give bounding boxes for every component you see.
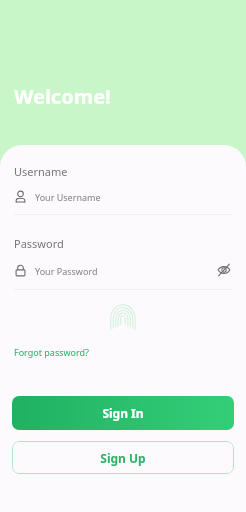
staticText: Sign Up: [100, 450, 146, 466]
button[interactable]: Fingerprint login: [107, 301, 139, 333]
button[interactable]: Your Username: [0, 188, 246, 205]
button[interactable]: Forgot password?: [14, 344, 90, 360]
staticText: Sign In: [102, 405, 144, 421]
button[interactable]: Sign In: [12, 396, 234, 430]
staticText: Forgot password?: [14, 346, 90, 358]
staticText: Welcome!: [14, 83, 111, 110]
staticText: Username: [14, 164, 68, 179]
staticText: Your Username: [35, 191, 101, 203]
staticText: Your Password: [35, 265, 98, 277]
button[interactable]: Sign Up: [12, 441, 234, 474]
button[interactable]: Show password: [214, 260, 234, 280]
staticText: Password: [14, 236, 64, 251]
button[interactable]: Your Password: [14, 262, 214, 279]
